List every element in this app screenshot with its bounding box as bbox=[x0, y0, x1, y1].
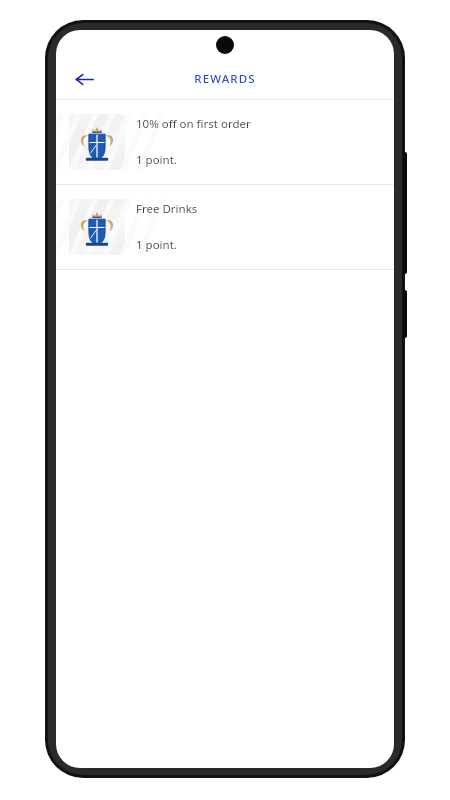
button[interactable]: 10% off on first order bbox=[56, 100, 394, 184]
staticText: 1 point. bbox=[136, 237, 177, 253]
button[interactable]: Free Drinks bbox=[56, 185, 394, 269]
staticText: Free Drinks bbox=[136, 201, 198, 217]
staticText: REWARDS bbox=[194, 71, 256, 87]
staticText: 1 point. bbox=[136, 152, 177, 168]
staticText: 10% off on first order bbox=[136, 116, 251, 132]
button[interactable]: Back bbox=[64, 59, 104, 99]
